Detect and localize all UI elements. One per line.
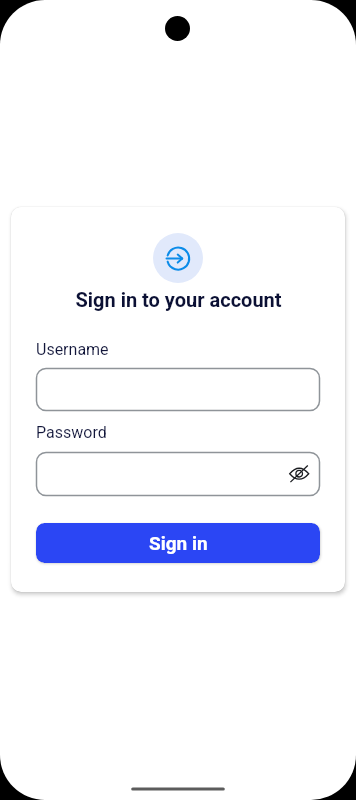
button[interactable]: Sign in [36, 523, 320, 563]
button[interactable]: Show password [36, 452, 320, 496]
staticText: Sign in [149, 532, 208, 554]
button[interactable]: Show password [288, 463, 310, 485]
staticText: Username [36, 340, 109, 359]
button[interactable] [36, 368, 320, 411]
staticText: Password [36, 423, 107, 442]
staticText: Sign in to your account [75, 288, 282, 311]
